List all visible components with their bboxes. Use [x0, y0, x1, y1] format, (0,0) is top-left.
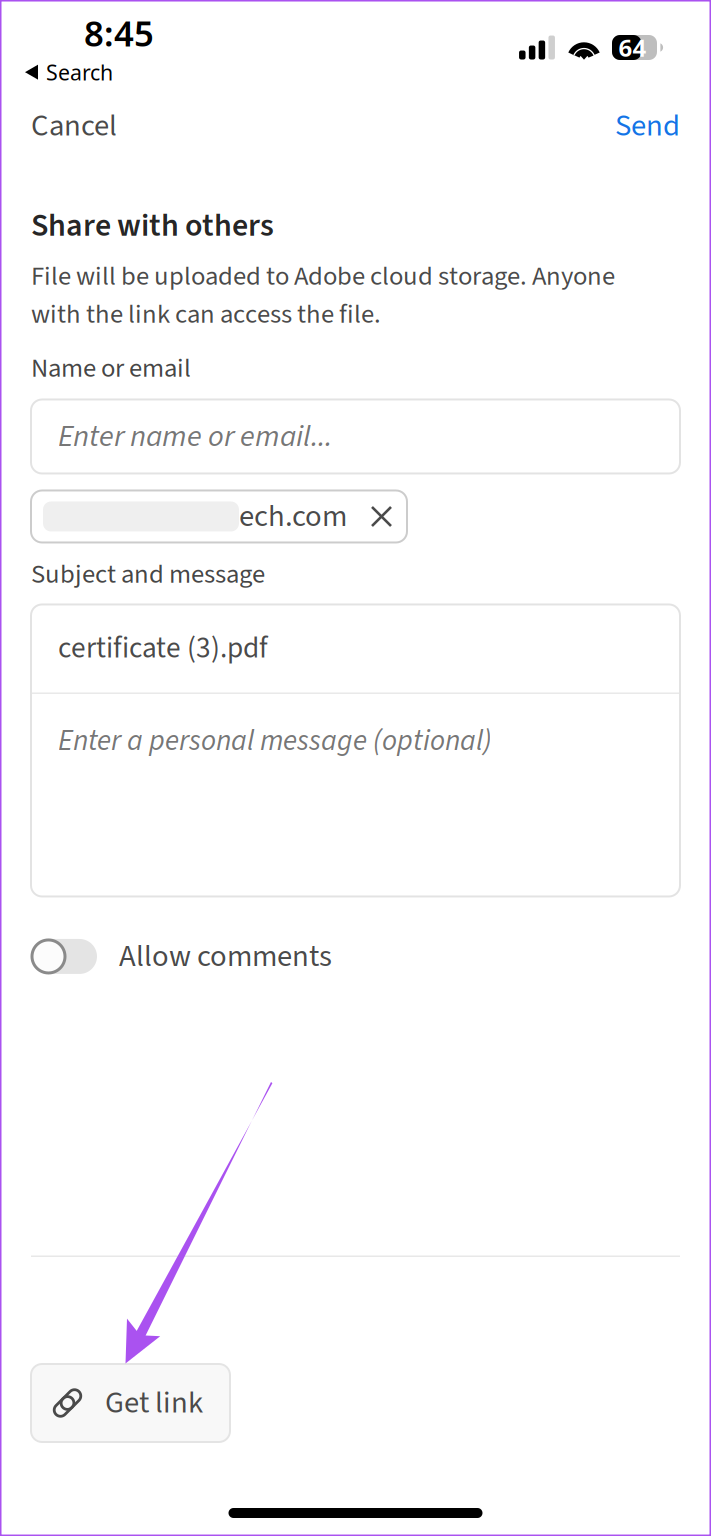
button[interactable]: Allow comments — [0, 938, 711, 974]
staticText: Search — [46, 58, 113, 86]
button[interactable]: Get link — [31, 1364, 230, 1442]
staticText: Enter name or email... — [58, 415, 332, 458]
staticText: ech.com — [239, 495, 347, 538]
staticText: 8:45 — [84, 10, 154, 56]
button[interactable]: Search — [0, 0, 711, 93]
staticText: Allow comments — [119, 935, 332, 978]
staticText: 64 — [618, 32, 646, 63]
staticText: File will be uploaded to Adobe cloud sto… — [31, 258, 615, 333]
staticText: Send — [615, 104, 680, 148]
staticText: Get link — [105, 1381, 203, 1425]
staticText: Name or email — [31, 349, 191, 387]
staticText: Share with others — [31, 203, 274, 249]
button[interactable]: Cancel — [0, 100, 139, 152]
staticText: Cancel — [31, 104, 117, 148]
staticText: Enter a personal message (optional) — [58, 720, 492, 762]
button[interactable]: Remove recipient — [364, 497, 399, 536]
staticText: certificate (3).pdf — [58, 628, 268, 669]
button[interactable]: Send — [593, 100, 711, 152]
staticText: Subject and message — [31, 555, 265, 593]
